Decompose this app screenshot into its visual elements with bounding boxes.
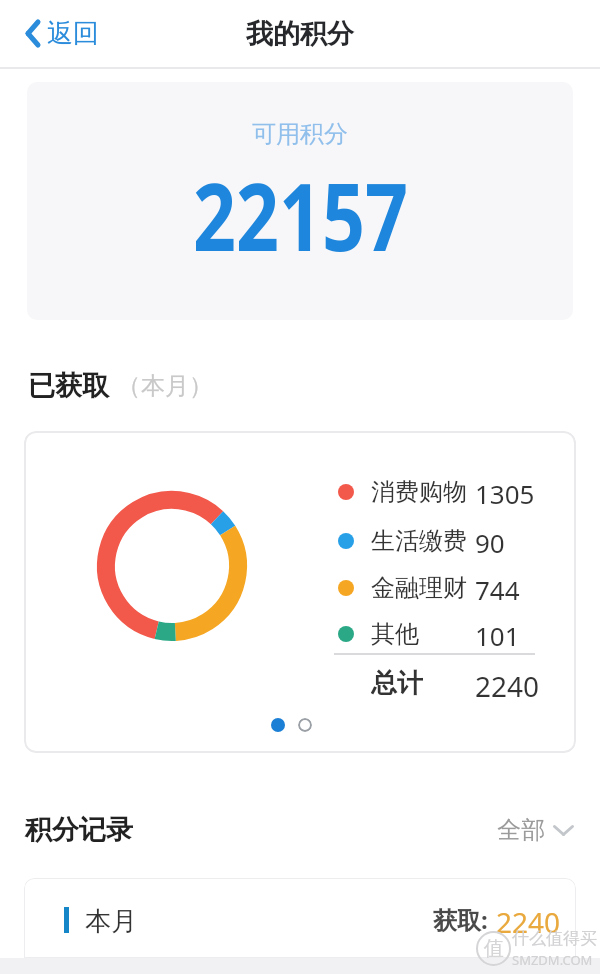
- staticText: （本月）: [117, 371, 213, 401]
- staticText: 已获取: [28, 369, 109, 403]
- staticText: 90: [475, 525, 505, 557]
- staticText: 值: [484, 936, 504, 961]
- button[interactable]: 全部: [497, 814, 574, 846]
- staticText: SMZDM.COM: [512, 951, 593, 969]
- staticText: 2240: [475, 667, 540, 699]
- staticText: 22157: [193, 151, 408, 279]
- staticText: 全部: [497, 815, 545, 845]
- staticText: 什么值得买: [512, 928, 597, 949]
- staticText: 返回: [47, 17, 99, 50]
- button[interactable]: 返回: [26, 17, 99, 50]
- staticText: 金融理财: [371, 573, 467, 603]
- staticText: 本月: [85, 905, 137, 935]
- staticText: 其他: [371, 619, 419, 649]
- button[interactable]: [271, 718, 285, 732]
- staticText: 获取:: [433, 903, 488, 933]
- staticText: 744: [475, 572, 520, 604]
- staticText: 消费购物: [371, 477, 467, 507]
- staticText: 2240: [496, 903, 561, 933]
- button[interactable]: [298, 718, 312, 732]
- button[interactable]: 可用积分: [27, 82, 573, 320]
- staticText: 我的积分: [246, 17, 354, 51]
- staticText: 101: [475, 618, 520, 650]
- staticText: 1305: [475, 476, 535, 508]
- staticText: 积分记录: [25, 813, 133, 847]
- staticText: 生活缴费: [371, 526, 467, 556]
- staticText: 总计: [371, 667, 423, 699]
- staticText: 可用积分: [252, 119, 348, 149]
- button[interactable]: 本月: [24, 878, 576, 958]
